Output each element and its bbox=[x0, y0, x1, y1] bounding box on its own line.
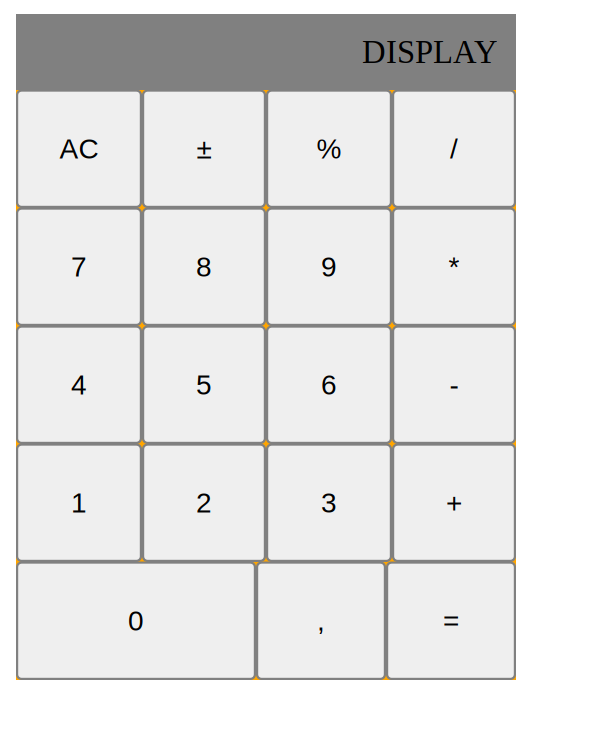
staticText: 7 bbox=[71, 251, 87, 282]
button[interactable]: 8 bbox=[142, 207, 266, 326]
staticText: 2 bbox=[196, 487, 212, 518]
staticText: AC bbox=[59, 133, 98, 164]
button[interactable]: 1 bbox=[16, 443, 142, 562]
staticText: 6 bbox=[321, 369, 337, 400]
button[interactable]: 3 bbox=[266, 443, 392, 562]
button[interactable]: 7 bbox=[16, 207, 142, 326]
button[interactable]: 5 bbox=[142, 325, 266, 444]
button[interactable]: 0 bbox=[16, 561, 256, 680]
staticText: 1 bbox=[71, 487, 87, 518]
staticText: 5 bbox=[196, 369, 212, 400]
staticText: = bbox=[443, 605, 459, 636]
staticText: 9 bbox=[321, 251, 337, 282]
staticText: DISPLAY bbox=[362, 34, 498, 70]
button[interactable]: / bbox=[392, 89, 516, 208]
button[interactable]: ± bbox=[142, 89, 266, 208]
button[interactable]: * bbox=[392, 207, 516, 326]
staticText: 4 bbox=[71, 369, 87, 400]
button[interactable]: % bbox=[266, 89, 392, 208]
staticText: + bbox=[446, 487, 462, 518]
staticText: / bbox=[450, 133, 458, 164]
button[interactable]: 2 bbox=[142, 443, 266, 562]
staticText: 8 bbox=[196, 251, 212, 282]
button[interactable]: 9 bbox=[266, 207, 392, 326]
staticText: * bbox=[448, 251, 459, 282]
button[interactable]: - bbox=[392, 325, 516, 444]
staticText: % bbox=[316, 133, 341, 164]
button[interactable]: 6 bbox=[266, 325, 392, 444]
button[interactable]: + bbox=[392, 443, 516, 562]
button[interactable]: AC bbox=[16, 89, 142, 208]
button[interactable]: 4 bbox=[16, 325, 142, 444]
staticText: ± bbox=[196, 133, 211, 164]
staticText: - bbox=[449, 369, 458, 400]
staticText: 0 bbox=[128, 605, 144, 636]
button[interactable]: = bbox=[386, 561, 516, 680]
button[interactable]: , bbox=[256, 561, 386, 680]
staticText: , bbox=[317, 605, 325, 636]
staticText: 3 bbox=[321, 487, 337, 518]
